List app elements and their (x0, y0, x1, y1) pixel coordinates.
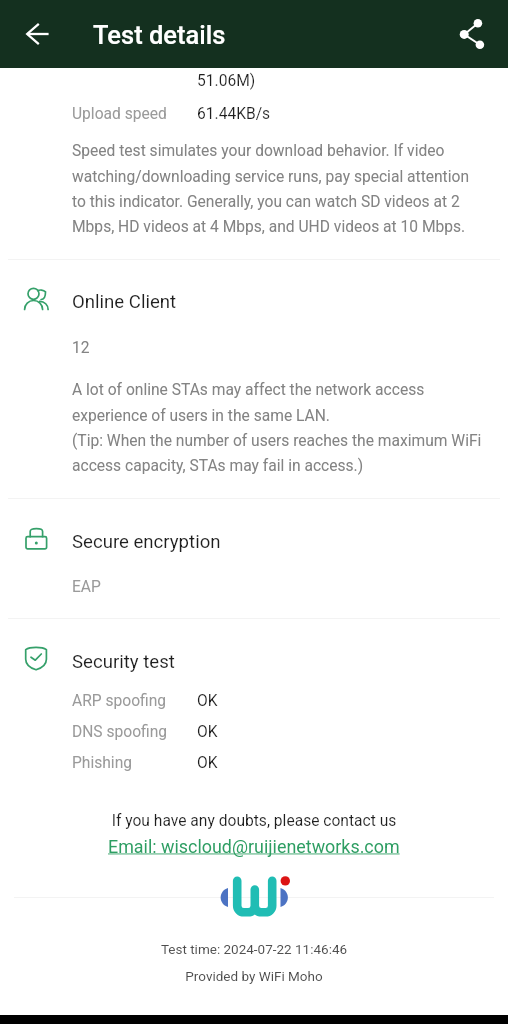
staticText: 12 (72, 339, 90, 357)
staticText: Upload speed (72, 105, 167, 123)
staticText: If you have any doubts, please contact u… (0, 812, 508, 830)
staticText: Test details (93, 20, 226, 50)
staticText: 61.44KB/s (197, 105, 271, 123)
button[interactable]: Secure encryption (0, 526, 508, 558)
staticText: OK (197, 692, 218, 710)
staticText: DNS spoofing (72, 723, 168, 741)
staticText: Test time: 2024-07-22 11:46:46 (0, 941, 508, 957)
staticText: OK (197, 723, 218, 741)
staticText: Phishing (72, 754, 133, 772)
button[interactable]: Back (16, 12, 60, 56)
staticText: Secure encryption (72, 531, 221, 553)
staticText: A lot of online STAs may affect the netw… (72, 381, 484, 475)
button[interactable]: Share (450, 12, 494, 56)
staticText: EAP (72, 578, 101, 596)
button[interactable]: Online Client (0, 286, 508, 318)
button[interactable]: Email: wiscloud@ruijienetworks.com (108, 836, 400, 857)
staticText: Speed test simulates your download behav… (72, 142, 484, 236)
staticText: Provided by WiFi Moho (0, 968, 508, 984)
staticText: ARP spoofing (72, 692, 167, 710)
staticText: Online Client (72, 291, 177, 313)
staticText: Security test (72, 651, 175, 673)
staticText: 51.06M) (197, 72, 256, 90)
staticText: OK (197, 754, 218, 772)
button[interactable]: Security test (0, 646, 508, 678)
